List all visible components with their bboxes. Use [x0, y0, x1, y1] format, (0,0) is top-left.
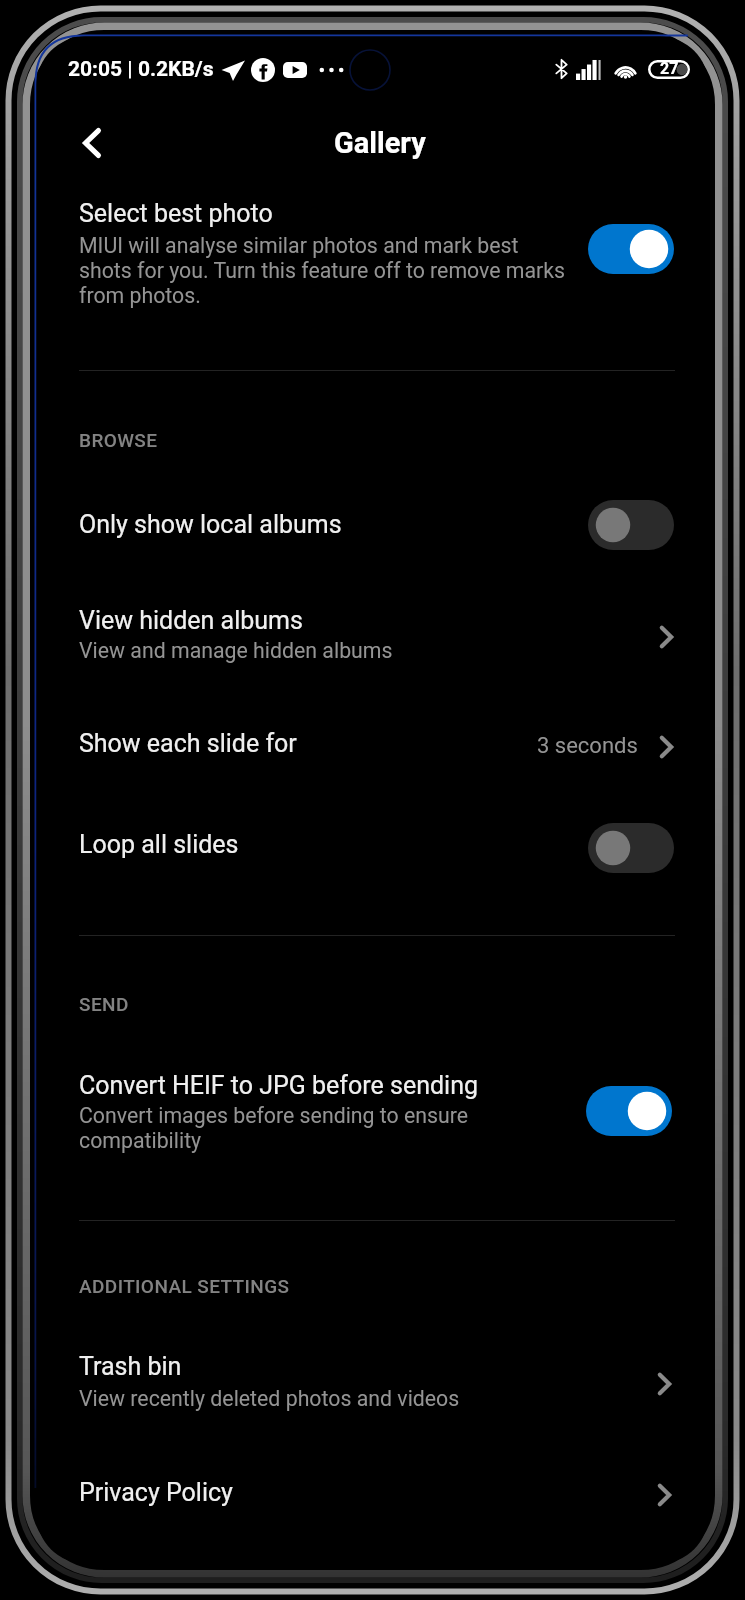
- staticText: View hidden albums: [79, 606, 303, 635]
- button[interactable]: Privacy Policy: [79, 1450, 675, 1544]
- button[interactable]: Open: [648, 1474, 681, 1515]
- button[interactable]: Convert HEIF to JPG before sending: [79, 1044, 675, 1174]
- button[interactable]: Switch off: [588, 823, 674, 873]
- staticText: Privacy Policy: [79, 1478, 233, 1507]
- button[interactable]: Switch on: [586, 1086, 672, 1136]
- staticText: ADDITIONAL SETTINGS: [79, 1275, 290, 1297]
- button[interactable]: Trash bin: [79, 1326, 675, 1431]
- staticText: Loop all slides: [79, 830, 239, 859]
- button[interactable]: Open: [650, 616, 683, 657]
- staticText: Gallery: [334, 126, 426, 160]
- button[interactable]: Switch off: [588, 500, 674, 550]
- button[interactable]: View hidden albums: [79, 580, 675, 685]
- staticText: View and manage hidden albums: [79, 638, 393, 663]
- staticText: 3 seconds: [537, 733, 638, 759]
- button[interactable]: Open: [650, 726, 683, 767]
- staticText: 20:05 | 0.2KB/s: [68, 57, 214, 82]
- button[interactable]: Only show local albums: [79, 478, 675, 572]
- button[interactable]: Loop all slides: [79, 800, 675, 894]
- staticText: Convert images before sending to ensure …: [79, 1103, 469, 1153]
- staticText: 27: [660, 59, 679, 78]
- staticText: Convert HEIF to JPG before sending: [79, 1071, 478, 1100]
- button[interactable]: Switch on: [588, 224, 674, 274]
- staticText: Only show local albums: [79, 510, 342, 539]
- staticText: SEND: [79, 993, 129, 1015]
- staticText: MIUI will analyse similar photos and mar…: [79, 233, 566, 308]
- button[interactable]: Select best photo: [79, 176, 675, 336]
- button[interactable]: Show each slide for: [79, 700, 675, 794]
- staticText: Select best photo: [79, 199, 273, 228]
- button[interactable]: Open: [648, 1363, 681, 1404]
- staticText: Trash bin: [79, 1352, 182, 1381]
- staticText: BROWSE: [79, 429, 158, 451]
- staticText: Show each slide for: [79, 729, 297, 758]
- button[interactable]: Back: [68, 119, 116, 167]
- staticText: View recently deleted photos and videos: [79, 1386, 460, 1411]
